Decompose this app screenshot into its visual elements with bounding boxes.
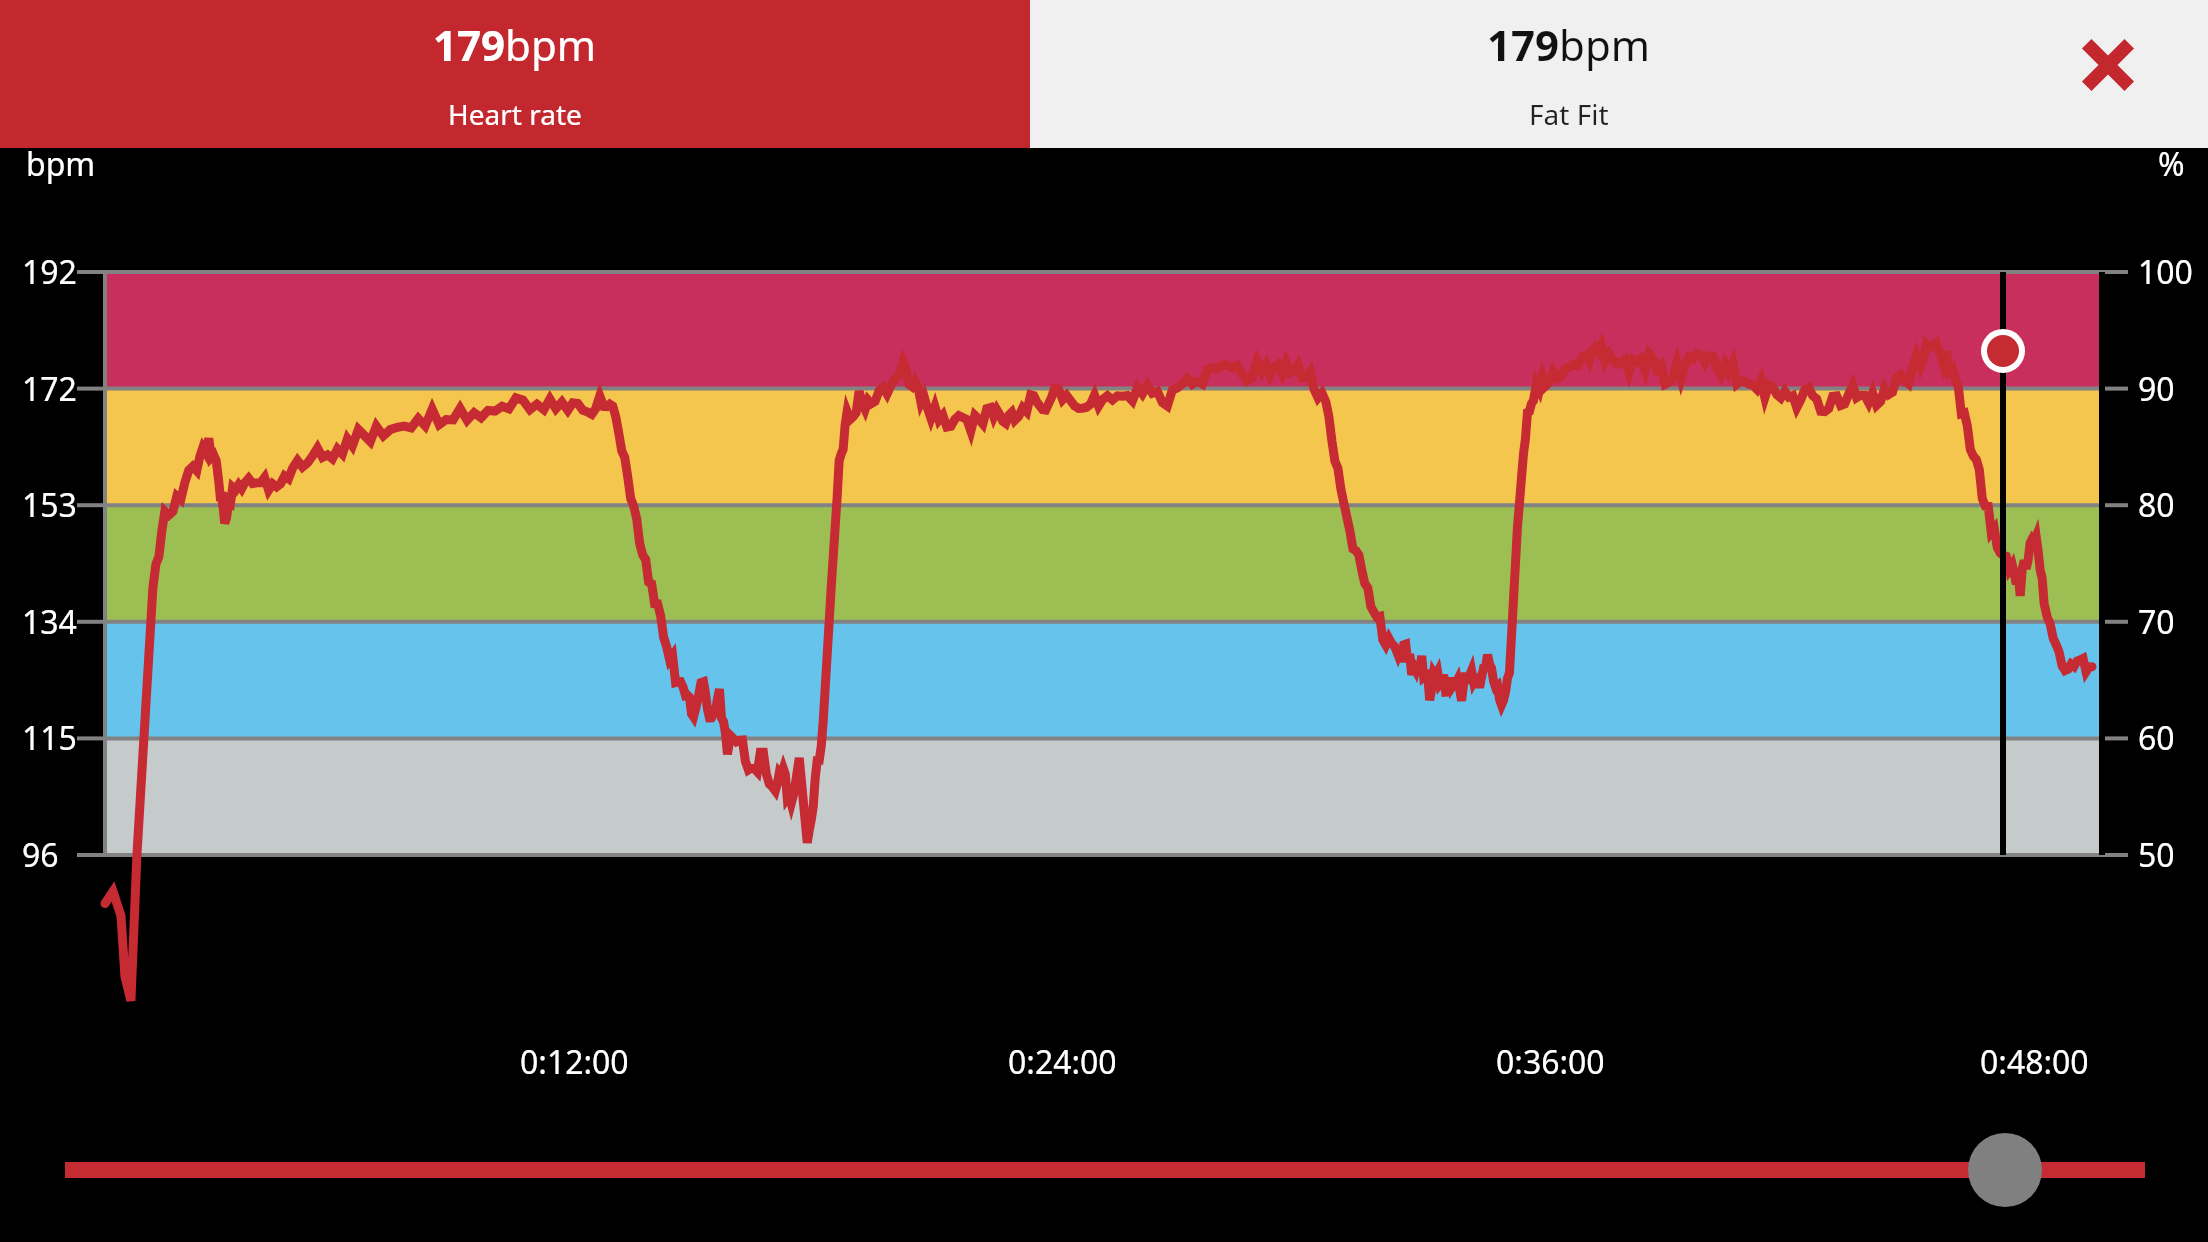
staticText: 96 [22,833,88,877]
staticText: 0:12:00 [520,1040,629,1084]
staticText: Fat Fit [1529,95,1609,133]
staticText: 0:48:00 [1980,1040,2089,1084]
staticText: 192 [22,250,88,294]
staticText: bpm [26,142,96,186]
staticText: 70 [2138,600,2175,644]
staticText: 60 [2138,716,2175,760]
staticText: 179bpm [1487,16,1651,73]
staticText: 172 [22,367,88,411]
staticText: 0:24:00 [1008,1040,1117,1084]
staticText: 134 [22,600,88,644]
staticText: 0:36:00 [1496,1040,1605,1084]
staticText: % [2158,142,2185,186]
button[interactable]: 179bpm [0,0,1030,148]
button[interactable]: 179bpm [1487,16,1651,133]
staticText: 115 [22,716,88,760]
staticText: 100 [2138,250,2193,294]
staticText: 153 [22,483,88,527]
staticText: 50 [2138,833,2175,877]
staticText: Heart rate [448,95,582,133]
staticText: 90 [2138,367,2175,411]
staticText: 80 [2138,483,2175,527]
staticText: 179bpm [433,16,597,73]
button[interactable]: Close [2063,20,2153,110]
